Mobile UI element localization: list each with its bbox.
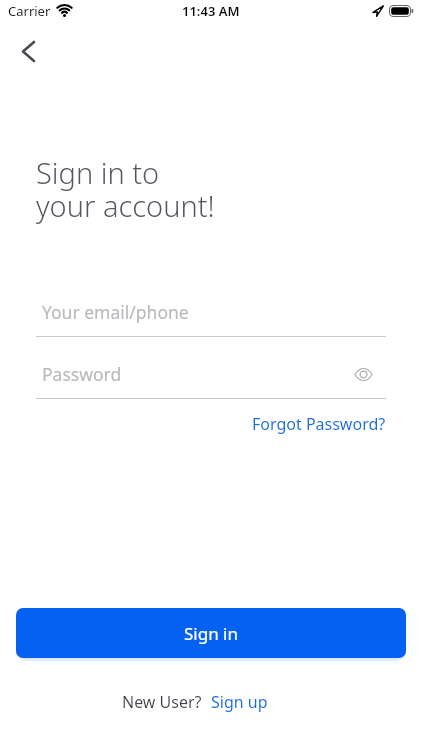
button[interactable]: Forgot Password? xyxy=(252,413,386,435)
button[interactable]: Sign up xyxy=(211,691,268,713)
button[interactable]: Password xyxy=(36,362,386,399)
staticText: New User? xyxy=(122,691,202,713)
button[interactable]: Your email/phone xyxy=(36,300,386,337)
staticText: Sign in to your account! xyxy=(36,153,215,225)
button[interactable] xyxy=(354,368,373,381)
staticText: Carrier xyxy=(8,2,51,20)
staticText: Password xyxy=(42,362,122,386)
button[interactable] xyxy=(8,31,48,71)
button[interactable]: Sign in xyxy=(16,608,406,658)
staticText: Your email/phone xyxy=(42,300,189,324)
staticText: 11:43 AM xyxy=(182,2,240,20)
staticText: Sign in xyxy=(184,622,238,645)
